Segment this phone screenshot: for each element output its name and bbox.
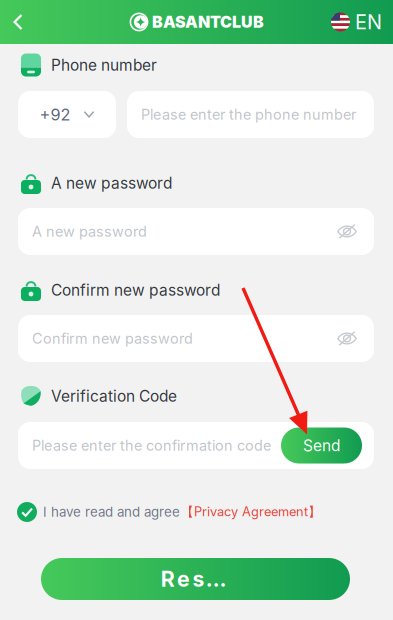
staticText: Send [303,436,340,455]
staticText: Confirm new password [32,330,193,347]
staticText: EN [355,10,382,34]
staticText: BASANTCLUB [152,12,264,32]
button[interactable]: Send [281,427,362,463]
button[interactable]: Language English [331,0,393,44]
staticText: A new password [32,223,147,240]
staticText: Confirm new password [51,281,220,299]
button[interactable]: Show password [325,315,369,362]
button[interactable]: Country code +92 [18,91,116,138]
button[interactable]: Reset [0,558,393,600]
staticText: +92 [39,105,70,124]
staticText: Please enter the confirmation code [32,437,271,454]
staticText: I have read and agree [43,504,180,520]
button[interactable]: Back [0,0,36,44]
staticText: A new password [51,174,172,192]
staticText: Please enter the phone number [141,106,356,123]
staticText: Verification Code [51,387,177,405]
button[interactable]: Show password [325,208,369,255]
button[interactable]: I have read and agree [0,497,393,527]
staticText: Phone number [51,56,157,74]
staticText: 【Privacy Agreement】 [181,504,321,520]
staticText: Reset [161,566,230,592]
